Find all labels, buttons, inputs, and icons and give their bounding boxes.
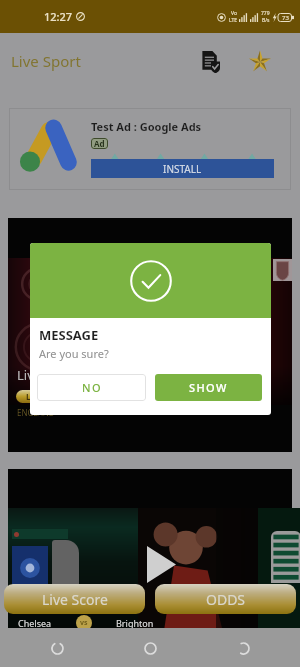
button[interactable]: NO	[37, 374, 146, 401]
button[interactable]	[8, 469, 292, 628]
button[interactable]: Test Ad : Google Ads	[9, 108, 291, 190]
staticText: 12:27	[44, 9, 73, 24]
button[interactable]: Favourites	[244, 45, 276, 77]
button[interactable]: SHOW	[155, 374, 262, 401]
button[interactable]: Privacy policy	[194, 45, 226, 77]
staticText: INSTALL	[163, 162, 202, 176]
staticText: MESSAGE	[39, 326, 99, 344]
staticText: B/s	[262, 17, 270, 24]
button[interactable]: Live Score	[4, 584, 145, 614]
staticText: vs	[80, 618, 88, 628]
staticText: Ad	[94, 138, 105, 149]
staticText: Vo	[231, 10, 237, 17]
staticText: ENGLAND	[17, 407, 55, 418]
staticText: LIVE	[26, 391, 44, 402]
staticText: ODDS	[206, 590, 246, 609]
staticText: NO	[82, 380, 102, 395]
staticText: Are you sure?	[39, 346, 109, 361]
button[interactable]: Recents	[40, 631, 74, 665]
button[interactable]: ODDS	[155, 584, 296, 614]
staticText: Live Score	[42, 590, 108, 609]
staticText: Test Ad : Google Ads	[91, 119, 202, 134]
button[interactable]: Live Sport	[8, 218, 292, 452]
button[interactable]: Home	[133, 631, 167, 665]
staticText: Live Sport	[11, 51, 81, 71]
staticText: SHOW	[189, 380, 228, 395]
staticText: LTE	[229, 17, 238, 24]
button[interactable]: Back	[226, 631, 260, 665]
staticText: Chelsea	[18, 617, 52, 629]
staticText: 779	[261, 10, 270, 17]
staticText: Brighton	[116, 617, 154, 629]
staticText: 73	[282, 14, 289, 22]
staticText: Live Sport	[17, 366, 78, 384]
